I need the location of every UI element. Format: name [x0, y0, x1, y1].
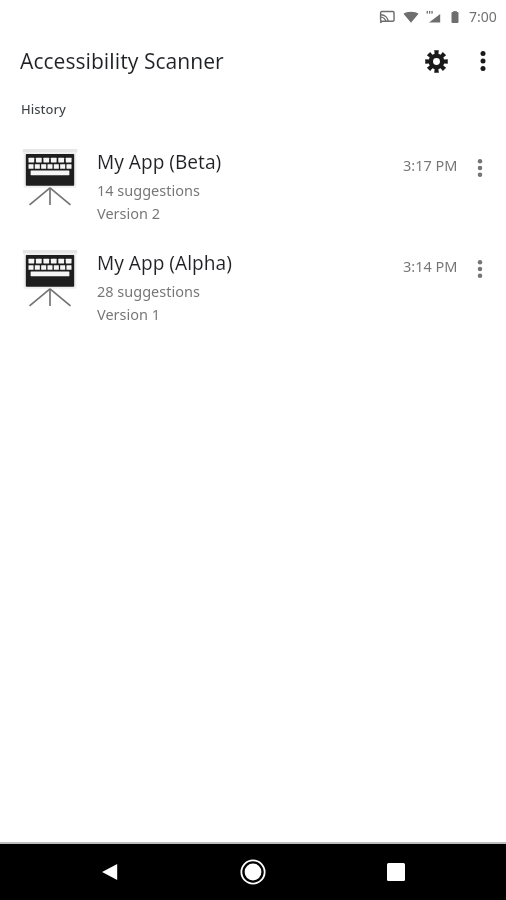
staticText: Version 2 — [97, 203, 161, 223]
staticText: 3:17 PM — [403, 155, 458, 175]
staticText: 7:00 — [469, 7, 497, 26]
button[interactable]: Settings — [412, 37, 460, 85]
button[interactable]: More options — [458, 146, 502, 190]
button[interactable]: Home — [229, 848, 277, 896]
button[interactable]: More options — [458, 247, 502, 291]
button[interactable]: Back — [86, 848, 134, 896]
staticText: Accessibility Scanner — [20, 47, 224, 76]
staticText: My App (Beta) — [97, 149, 222, 175]
staticText: 28 suggestions — [97, 281, 200, 301]
button[interactable]: Recent apps — [372, 848, 420, 896]
staticText: 3:14 PM — [403, 256, 458, 276]
staticText: My App (Alpha) — [97, 250, 232, 276]
button[interactable]: More options — [460, 38, 506, 84]
staticText: 14 suggestions — [97, 180, 200, 200]
staticText: History — [21, 100, 66, 118]
button[interactable]: My App (Beta) — [0, 142, 506, 227]
button[interactable]: My App (Alpha) — [0, 243, 506, 328]
staticText: Version 1 — [97, 304, 161, 324]
